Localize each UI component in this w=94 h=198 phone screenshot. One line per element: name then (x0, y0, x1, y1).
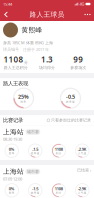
staticText: 人气值 (78, 152, 87, 155)
staticText: 1108 (3, 54, 23, 65)
button[interactable]: 上海站 (0, 125, 94, 160)
staticText: -2.9K (78, 186, 87, 191)
staticText: 胜率 (9, 191, 15, 195)
staticText: 胜率 (9, 152, 15, 155)
staticText: -0.5 (66, 93, 75, 100)
staticText: 黄熙峰 (21, 26, 42, 34)
staticText: 参赛场次 (70, 65, 86, 70)
button[interactable]: 只看参加过的比赛记录 (47, 118, 91, 123)
staticText: 分 (24, 60, 28, 65)
staticText: 注册于 2017 年 (23, 47, 49, 52)
staticText: 比赛记录 (3, 117, 23, 124)
staticText: 效率值 (31, 191, 40, 195)
staticText: 城市赛 (27, 169, 39, 174)
staticText: -2.9K (78, 146, 87, 152)
button[interactable]: Back (0, 8, 12, 21)
staticText: 积分 (56, 152, 62, 155)
staticText: 25% (18, 93, 29, 100)
staticText: -1.5 (32, 146, 38, 152)
button[interactable]: More (81, 8, 94, 21)
staticText: 场均得分 (39, 65, 55, 70)
staticText: 08-30 19:30 (3, 137, 22, 142)
button[interactable]: 上海站 (0, 165, 94, 198)
staticText: 积分 (56, 191, 62, 195)
staticText: 99 (73, 54, 83, 65)
staticText: 身高 185CM 体重 85KG 上海 (3, 40, 53, 45)
staticText: 0% (9, 186, 15, 191)
staticText: 0% (9, 146, 15, 152)
staticText: 4G (79, 1, 84, 7)
staticText: 1.3 (41, 54, 53, 65)
staticText: 效率值 (31, 152, 40, 155)
staticText: 效率值 (66, 100, 75, 103)
staticText: 1108 (55, 186, 63, 191)
staticText: 已结束 › (77, 167, 91, 173)
staticText: 15:44 (3, 1, 12, 7)
staticText: 上海站 (3, 167, 24, 176)
staticText: 路人王球员 (29, 10, 64, 19)
staticText: 人气值 (78, 191, 87, 195)
staticText: 球员编号 (3, 47, 19, 52)
staticText: 路人王总积分 (4, 65, 28, 70)
staticText: 07-09 12:00 (3, 176, 22, 182)
staticText: 路人王表现 (3, 80, 28, 87)
staticText: 1108 (55, 146, 63, 152)
staticText: -1.5 (32, 186, 38, 191)
staticText: 城市赛 (27, 129, 39, 134)
staticText: 只看参加过的比赛记录 (51, 118, 91, 123)
staticText: 上海站 (3, 128, 24, 136)
staticText: 胜率 (20, 100, 26, 103)
